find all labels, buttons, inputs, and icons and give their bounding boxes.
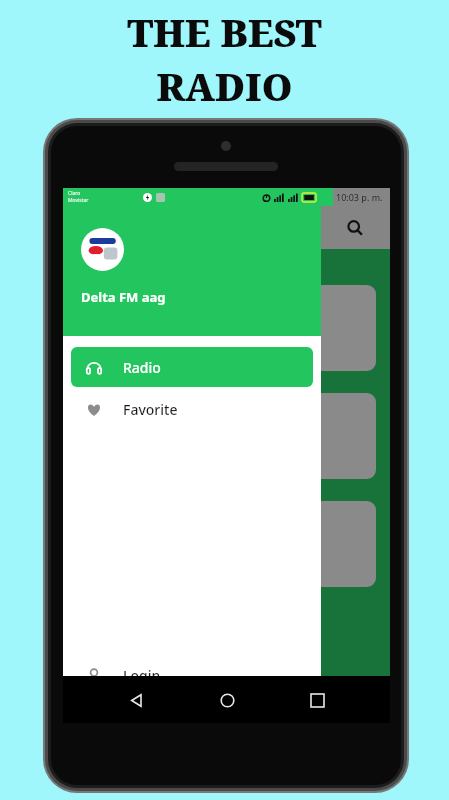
button[interactable]: Search [342, 215, 368, 241]
button[interactable] [77, 285, 376, 371]
staticText: Claro [68, 190, 81, 197]
button[interactable]: Home [210, 683, 244, 717]
button[interactable]: Back [119, 683, 153, 717]
button[interactable]: Favorite [71, 387, 313, 431]
staticText: RADIO [156, 60, 293, 112]
button[interactable]: Recents [300, 683, 334, 717]
button[interactable]: Radio [71, 347, 313, 387]
staticText: Movistar [68, 197, 89, 204]
button[interactable]: Radio Indonesia [77, 501, 376, 587]
staticText: THE BEST [127, 6, 322, 58]
staticText: Delta FM aag [81, 288, 166, 306]
staticText: Login [123, 666, 161, 685]
staticText: Radio [123, 358, 161, 377]
button[interactable]: Login [71, 653, 313, 697]
staticText: 10:03 p. m. [336, 191, 383, 203]
staticText: Favorite [123, 400, 178, 419]
button[interactable] [77, 393, 376, 479]
